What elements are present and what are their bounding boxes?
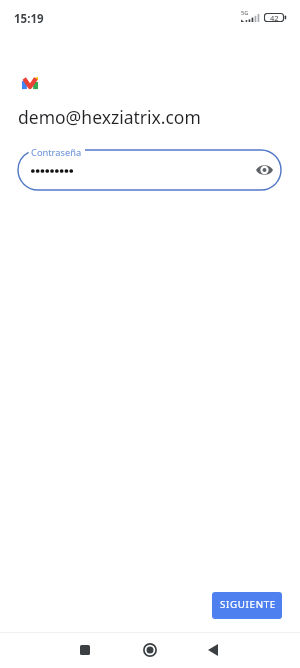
staticText: 15:19 bbox=[14, 11, 44, 27]
staticText: SIGUIENTE bbox=[220, 598, 276, 611]
button[interactable]: Contraseña bbox=[18, 150, 281, 190]
button[interactable]: Atrás bbox=[200, 637, 226, 663]
staticText: Contraseña bbox=[31, 146, 82, 159]
button[interactable]: Recientes bbox=[72, 637, 98, 663]
button[interactable]: Inicio bbox=[137, 637, 163, 663]
staticText: 42 bbox=[270, 13, 279, 23]
staticText: 5G bbox=[241, 9, 249, 16]
staticText: demo@hexziatrix.com bbox=[18, 105, 201, 129]
button[interactable]: SIGUIENTE bbox=[212, 592, 282, 619]
button[interactable]: Mostrar contraseña bbox=[252, 158, 276, 182]
